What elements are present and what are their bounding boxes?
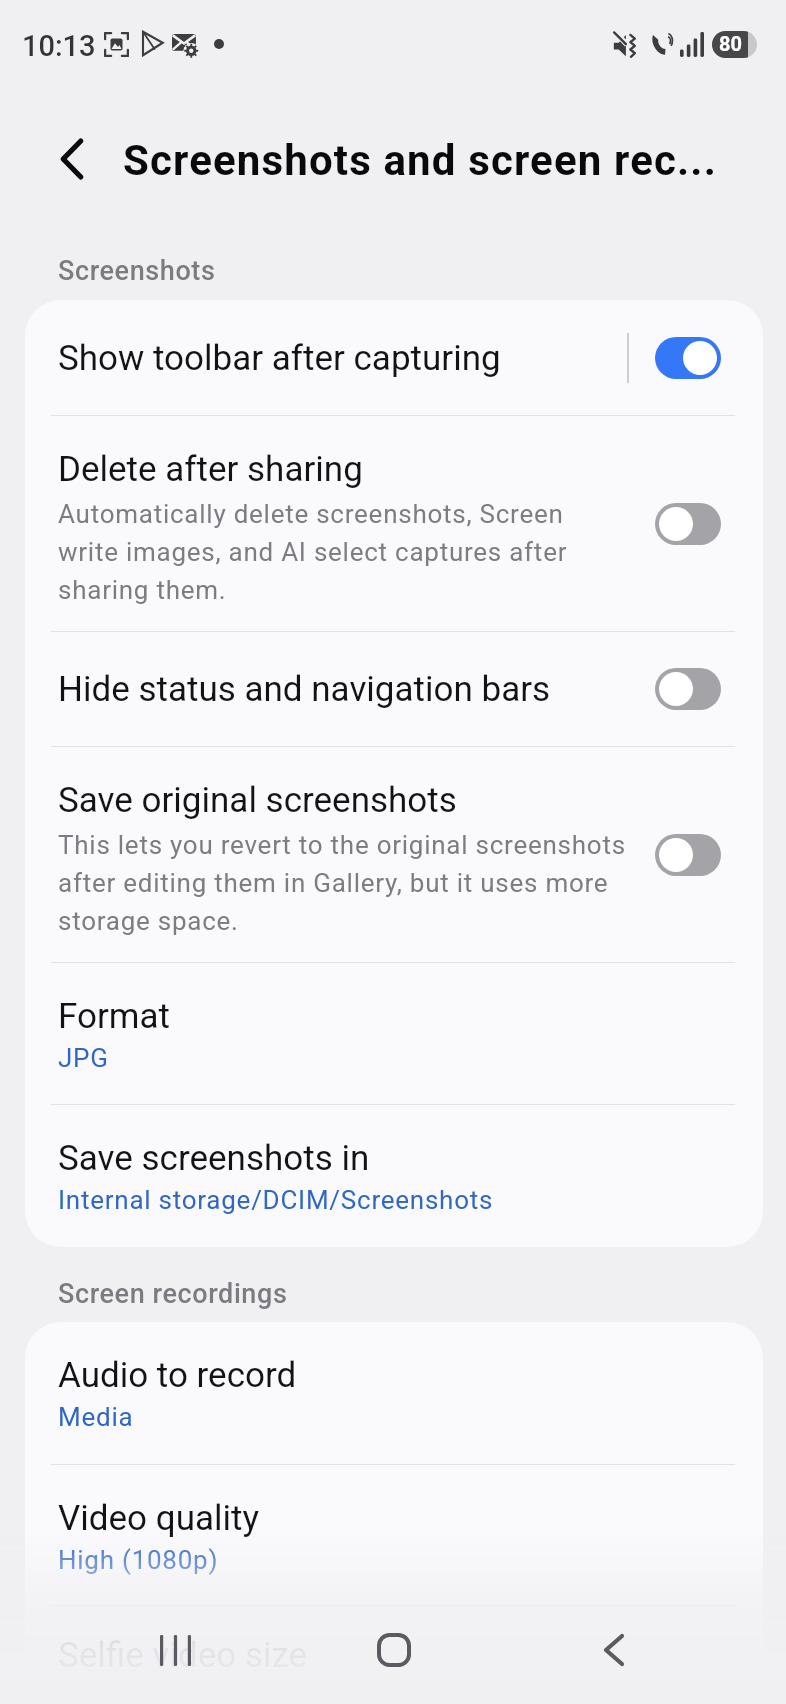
staticText: Screenshots: [58, 254, 216, 287]
button[interactable]: Show toolbar after capturing: [25, 300, 763, 415]
button[interactable]: Navigate up: [46, 133, 98, 185]
staticText: Video quality: [58, 1497, 259, 1539]
staticText: JPG: [58, 1037, 109, 1075]
button[interactable]: Off: [655, 668, 721, 710]
button[interactable]: Off: [655, 834, 721, 876]
button[interactable]: Selfie video size: [25, 1606, 763, 1704]
button[interactable]: Save screenshots in: [25, 1105, 763, 1247]
staticText: Screenshots and screen rec...: [123, 134, 718, 186]
button[interactable]: On: [655, 337, 721, 379]
button[interactable]: Home: [346, 1602, 442, 1698]
button[interactable]: Recent apps: [127, 1602, 223, 1698]
staticText: Automatically delete screenshots, Screen…: [58, 493, 578, 607]
staticText: This lets you revert to the original scr…: [58, 824, 636, 938]
staticText: Internal storage/DCIM/Screenshots: [58, 1179, 494, 1217]
button[interactable]: Save original screenshots: [25, 747, 763, 962]
staticText: Screen recordings: [58, 1277, 288, 1310]
staticText: Format: [58, 995, 170, 1037]
button[interactable]: Video quality: [25, 1465, 763, 1605]
staticText: Show toolbar after capturing: [58, 337, 501, 379]
button[interactable]: Audio to record: [25, 1322, 763, 1464]
staticText: Save original screenshots: [58, 779, 457, 821]
button[interactable]: Format: [25, 963, 763, 1104]
button[interactable]: Off: [655, 503, 721, 545]
staticText: Media: [58, 1396, 134, 1434]
staticText: Hide status and navigation bars: [58, 668, 551, 710]
staticText: Delete after sharing: [58, 448, 363, 490]
staticText: High (1080p): [58, 1539, 219, 1577]
staticText: 80: [719, 31, 742, 56]
staticText: Selfie video size: [58, 1634, 308, 1676]
staticText: Audio to record: [58, 1354, 297, 1396]
staticText: Save screenshots in: [58, 1137, 370, 1179]
button[interactable]: Delete after sharing: [25, 416, 763, 631]
button[interactable]: Back: [566, 1602, 662, 1698]
button[interactable]: Hide status and navigation bars: [25, 632, 763, 746]
staticText: 10:13: [22, 27, 96, 63]
